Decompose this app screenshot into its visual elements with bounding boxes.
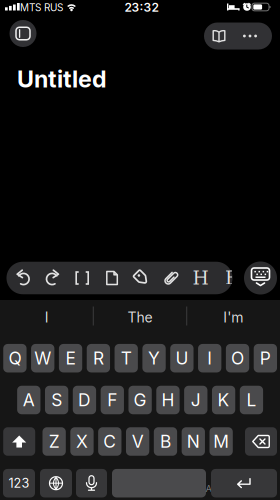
button[interactable]: More — [238, 22, 262, 49]
button[interactable]: The — [95, 302, 185, 332]
button[interactable]: Z — [42, 427, 66, 456]
staticText: S — [51, 389, 62, 410]
button[interactable]: L — [240, 386, 263, 414]
button[interactable]: A — [17, 386, 40, 414]
staticText: 123 — [8, 475, 29, 491]
button[interactable]: F — [101, 386, 124, 414]
button[interactable]: C — [98, 427, 121, 456]
staticText: G — [134, 389, 147, 410]
button[interactable]: Shift — [3, 427, 35, 456]
staticText: M — [213, 431, 229, 452]
staticText: P — [260, 348, 271, 369]
staticText: A — [205, 483, 211, 494]
button[interactable]: S — [45, 386, 68, 414]
button[interactable]: Notes — [9, 20, 36, 47]
staticText: H — [193, 267, 209, 289]
button[interactable]: Y — [142, 344, 166, 372]
button[interactable]: Reader view — [202, 22, 236, 49]
staticText: D — [78, 389, 91, 410]
button[interactable]: P — [254, 344, 277, 372]
staticText: I'm — [223, 309, 243, 326]
staticText: L — [246, 389, 256, 410]
staticText: Q — [8, 348, 21, 369]
staticText: C — [103, 431, 116, 452]
staticText: K — [218, 389, 230, 410]
staticText: N — [187, 431, 200, 452]
button[interactable]: Attachment — [158, 262, 184, 294]
staticText: 23:32 — [124, 0, 158, 15]
button[interactable]: D — [73, 386, 96, 414]
button[interactable]: Next keyboard — [40, 469, 72, 497]
button[interactable]: Brackets — [69, 262, 95, 294]
button[interactable]: U — [170, 344, 193, 372]
button[interactable]: V — [126, 427, 149, 456]
staticText: I — [45, 309, 49, 326]
button[interactable]: Undo — [10, 262, 36, 294]
staticText: T — [121, 348, 132, 369]
button[interactable]: Hide keyboard — [244, 261, 277, 294]
staticText: Y — [148, 348, 160, 369]
button[interactable]: W — [31, 344, 54, 372]
staticText: Z — [49, 431, 60, 452]
button[interactable]: Attach note — [99, 262, 125, 294]
staticText: Untitled — [17, 65, 107, 93]
staticText: A — [23, 389, 35, 410]
button[interactable]: I — [2, 302, 92, 332]
button[interactable]: N — [182, 427, 205, 456]
button[interactable]: 123 — [3, 469, 35, 497]
button[interactable]: R — [87, 344, 110, 372]
staticText: O — [231, 348, 244, 369]
staticText: B — [160, 431, 171, 452]
button[interactable]: M — [209, 427, 233, 456]
button[interactable]: G — [128, 386, 152, 414]
staticText: B — [225, 267, 239, 289]
staticText: U — [175, 348, 188, 369]
staticText: E — [66, 348, 76, 369]
button[interactable]: J — [184, 386, 207, 414]
staticText: MTS RUS — [20, 1, 63, 14]
staticText: W — [34, 348, 51, 369]
button[interactable]: H — [156, 386, 180, 414]
button[interactable]: Return — [211, 469, 277, 497]
staticText: I — [207, 348, 212, 369]
staticText: R — [93, 348, 104, 369]
staticText: V — [132, 431, 144, 452]
button[interactable]: K — [212, 386, 235, 414]
button[interactable]: Bold — [225, 267, 232, 289]
staticText: X — [76, 431, 88, 452]
button[interactable]: X — [70, 427, 94, 456]
button[interactable]: I'm — [188, 302, 278, 332]
staticText: F — [107, 389, 117, 410]
staticText: The — [127, 309, 152, 326]
button[interactable]: Space — [112, 469, 206, 497]
button[interactable]: O — [226, 344, 249, 372]
button[interactable]: Q — [3, 344, 26, 372]
staticText: H — [161, 389, 174, 410]
button[interactable]: Heading — [188, 262, 214, 294]
staticText: J — [191, 389, 201, 410]
button[interactable]: Redo — [40, 262, 66, 294]
button[interactable]: T — [115, 344, 138, 372]
button[interactable]: E — [59, 344, 82, 372]
button[interactable]: B — [154, 427, 177, 456]
button[interactable]: Dictation — [76, 469, 107, 497]
button[interactable]: Delete — [245, 427, 277, 456]
button[interactable]: I — [198, 344, 221, 372]
button[interactable]: Tag — [128, 262, 154, 294]
